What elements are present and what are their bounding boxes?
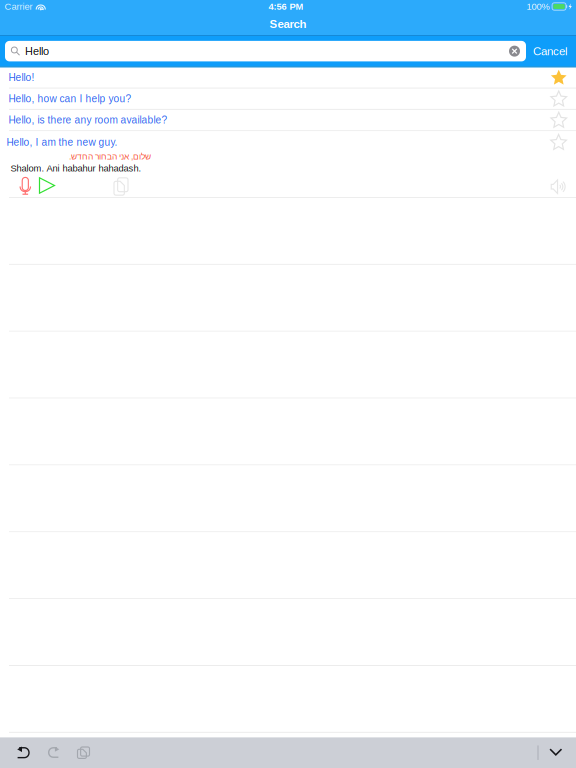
staticText: Shalom. Ani habahur hahadash. <box>10 163 141 173</box>
staticText: שלום, אני הבחור החדש. <box>68 152 150 161</box>
staticText: Hello, is there any room available? <box>8 114 167 126</box>
button[interactable]: Hide keyboard <box>536 737 576 768</box>
staticText: 100% <box>527 1 550 12</box>
button[interactable]: Speak <box>546 174 575 199</box>
button[interactable]: Hello, how can I help you? <box>0 89 576 110</box>
staticText: Hello! <box>8 72 34 83</box>
button[interactable]: Undo <box>3 737 33 768</box>
staticText: Hello, how can I help you? <box>8 93 131 104</box>
button[interactable]: Copy <box>110 174 132 199</box>
staticText: Carrier <box>4 1 32 12</box>
button[interactable]: Play <box>35 174 58 197</box>
staticText: Hello <box>25 45 49 57</box>
button[interactable]: Paste <box>69 737 97 768</box>
button[interactable]: Redo <box>40 737 70 768</box>
button[interactable]: Hello, is there any room available? <box>0 110 576 131</box>
staticText: Hello, I am the new guy. <box>6 136 117 148</box>
staticText: Cancel <box>533 45 568 57</box>
button[interactable]: Hello <box>5 41 526 61</box>
button[interactable]: Cancel <box>526 36 575 66</box>
staticText: Search <box>269 18 306 30</box>
staticText: 4:56 PM <box>269 1 304 12</box>
button[interactable]: Hello! <box>0 67 576 89</box>
button[interactable]: Record <box>16 173 34 198</box>
